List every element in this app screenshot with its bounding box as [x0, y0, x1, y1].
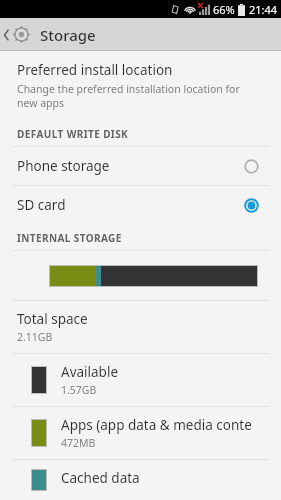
button[interactable]: Cached data [0, 460, 281, 500]
staticText: Phone storage [17, 157, 244, 175]
button[interactable]: Available [0, 354, 281, 406]
staticText: Storage [40, 25, 96, 45]
button[interactable]: Total space [0, 301, 281, 353]
staticText: Apps (app data & media conte [61, 416, 252, 434]
staticText: 472MB [61, 436, 96, 450]
staticText: 1.57GB [61, 383, 97, 397]
staticText: Change the preferred installation locati… [17, 82, 240, 110]
button[interactable]: Preferred install location [0, 51, 281, 120]
button[interactable]: Phone storage [0, 147, 281, 185]
staticText: 21:44 [249, 2, 278, 17]
button[interactable]: SD card [0, 186, 281, 224]
staticText: 2.11GB [17, 330, 53, 344]
staticText: 66% [213, 2, 235, 17]
staticText: INTERNAL STORAGE [17, 231, 122, 245]
staticText: Total space [17, 310, 88, 328]
staticText: SD card [17, 196, 244, 214]
button[interactable]: Navigate up [0, 18, 281, 51]
staticText: DEFAULT WRITE DISK [17, 127, 129, 141]
staticText: Preferred install location [17, 61, 173, 79]
staticText: Cached data [61, 469, 140, 487]
staticText: Available [61, 363, 118, 381]
button[interactable]: Apps (app data & media conte [0, 407, 281, 459]
